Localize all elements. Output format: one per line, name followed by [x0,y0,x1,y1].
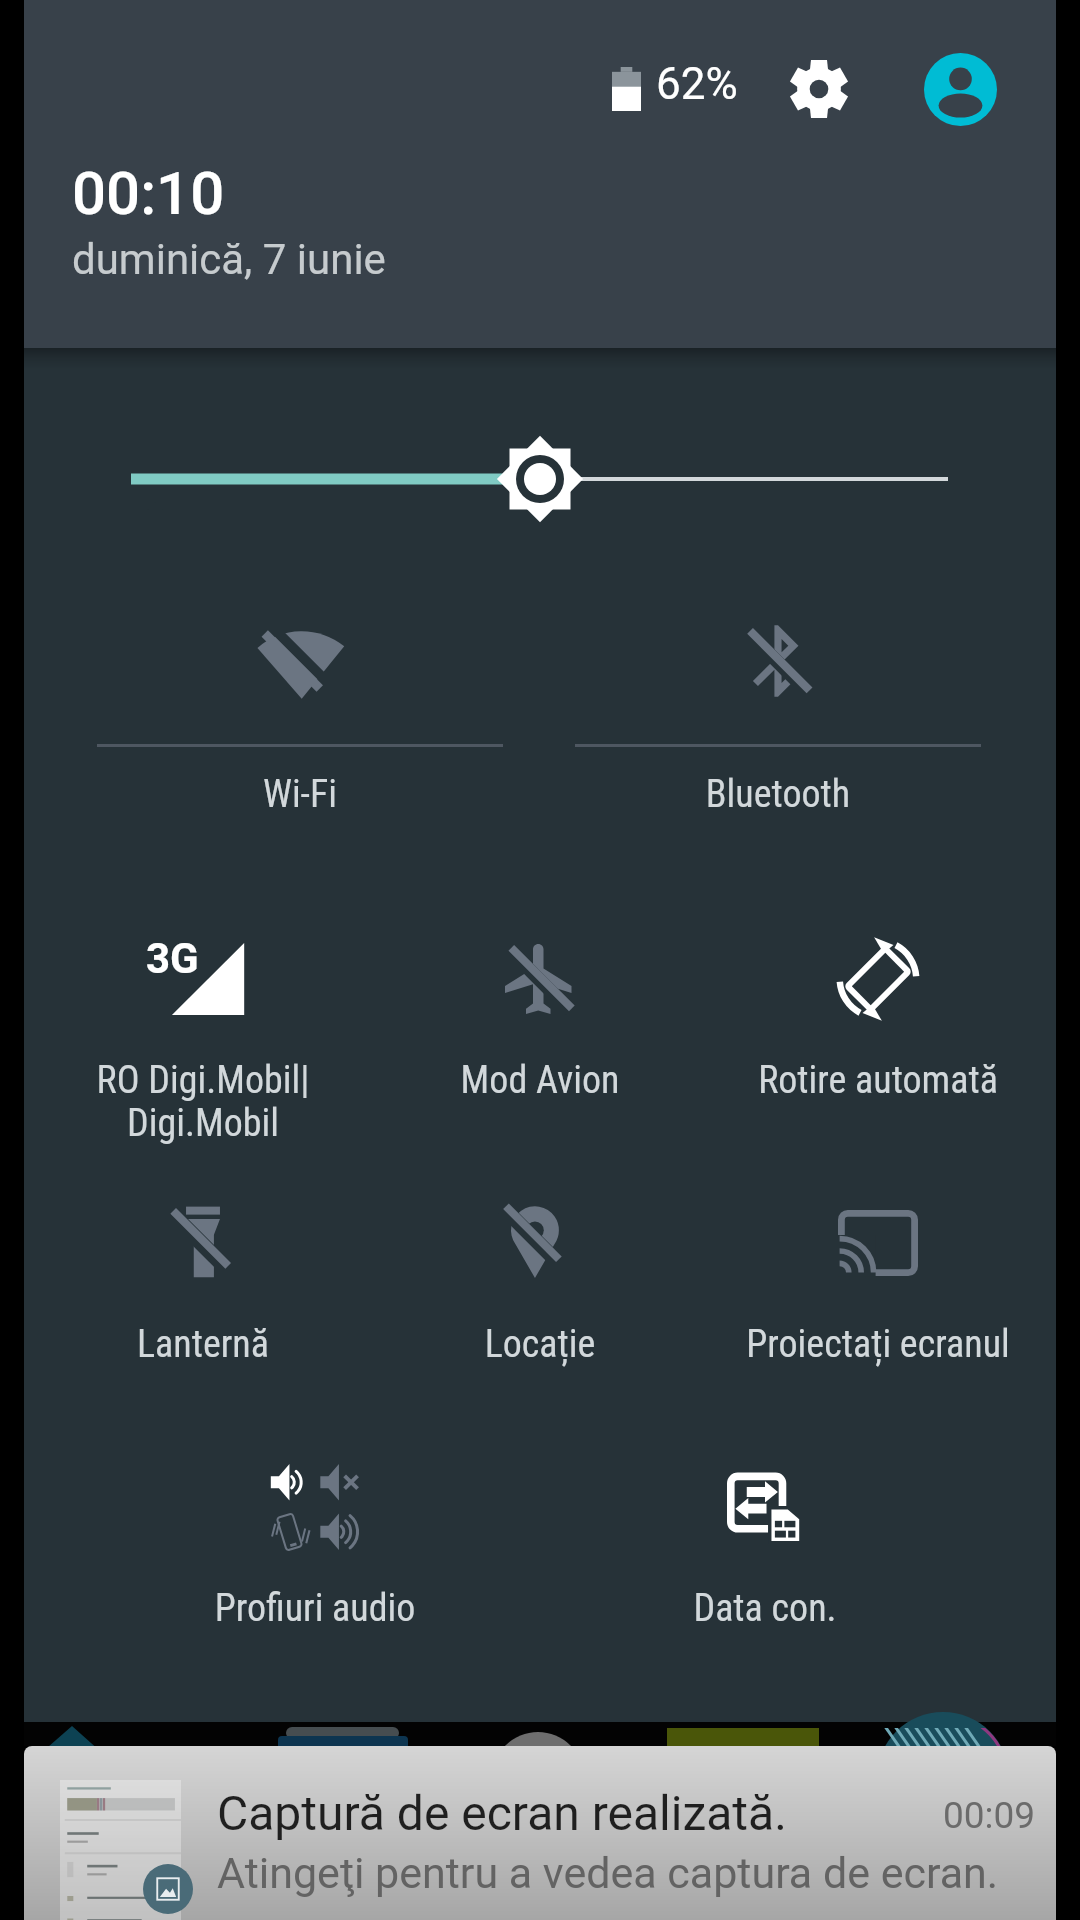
staticText: RO Digi.Mobil| Digi.Mobil [35,1058,371,1145]
button[interactable]: User profile [916,45,1004,133]
staticText: 00:10 [72,158,225,228]
button[interactable]: Proiectați ecranul [710,1169,1046,1379]
button[interactable]: Data con. [597,1434,933,1644]
button[interactable]: Profiuri audio [147,1428,483,1638]
button[interactable]: Mod Avion [372,903,708,1113]
staticText: Captură de ecran realizată. [217,1785,787,1841]
staticText: Data con. [597,1586,933,1631]
staticText: Proiectați ecranul [710,1322,1046,1367]
button[interactable]: Wi-Fi [42,580,558,836]
staticText: Mod Avion [372,1058,708,1103]
staticText: Locație [372,1322,708,1367]
staticText: Rotire automată [710,1058,1046,1103]
staticText: Lanternă [35,1322,371,1367]
button[interactable]: Locație [372,1166,708,1376]
button[interactable]: Captură de ecran realizată. [24,1746,1056,1920]
button[interactable]: Brightness [131,429,948,529]
button[interactable]: Rotire automată [710,902,1046,1112]
button[interactable]: Lanternă [35,1166,371,1376]
staticText: duminică, 7 iunie [72,235,386,284]
staticText: Atingeţi pentru a vedea captura de ecran… [217,1848,999,1898]
staticText: Wi-Fi [42,772,558,817]
staticText: 62% [656,58,738,110]
staticText: Bluetooth [520,772,1036,817]
staticText: 3G [146,934,199,983]
button[interactable]: Bluetooth [520,580,1036,836]
staticText: 00:09 [943,1794,1036,1837]
button[interactable]: RO Digi.Mobil| Digi.Mobil [35,903,371,1113]
button[interactable]: Settings [775,45,863,133]
staticText: Profiuri audio [147,1586,483,1631]
